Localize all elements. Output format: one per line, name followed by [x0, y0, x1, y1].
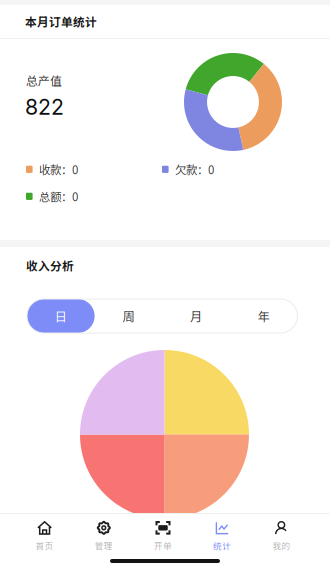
staticText: 欠款：0 [175, 161, 214, 178]
staticText: 822 [25, 94, 64, 120]
button[interactable]: 统计 [193, 521, 252, 551]
button[interactable]: 日 [27, 299, 95, 333]
button[interactable]: 管理 [74, 521, 133, 551]
button[interactable]: 我的 [252, 521, 311, 551]
staticText: 周 [122, 307, 134, 325]
staticText: 年 [258, 307, 270, 325]
staticText: 本月订单统计 [25, 13, 97, 30]
button[interactable]: 年 [230, 299, 297, 333]
staticText: 统计 [213, 539, 231, 552]
staticText: 总额：0 [39, 188, 78, 205]
staticText: 收入分析 [26, 257, 74, 274]
button[interactable]: 开单 [133, 521, 193, 551]
staticText: 收款：0 [39, 161, 78, 178]
staticText: 首页 [36, 539, 54, 552]
staticText: 总产值 [26, 72, 62, 89]
staticText: 开单 [154, 539, 172, 552]
staticText: 月 [190, 307, 202, 325]
button[interactable]: 周 [95, 299, 162, 333]
staticText: 日 [55, 307, 67, 325]
staticText: 我的 [272, 539, 290, 552]
button[interactable]: 月 [162, 299, 230, 333]
staticText: 管理 [95, 539, 113, 552]
button[interactable]: 首页 [15, 521, 74, 551]
